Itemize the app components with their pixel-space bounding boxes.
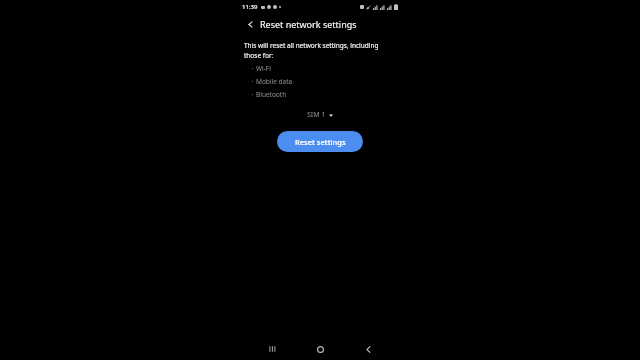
button[interactable]: Recents [262,338,284,360]
button[interactable]: SIM 1 [303,108,337,122]
staticText: Mobile data [256,77,293,86]
staticText: Wi-Fi [256,64,271,73]
staticText: SIM 1 [307,110,326,120]
staticText: Bluetooth [256,90,287,99]
button[interactable]: Home [309,338,331,360]
button[interactable]: Back [243,17,257,31]
button[interactable]: Back [357,338,379,360]
staticText: Reset network settings [260,18,357,30]
staticText: This will reset all network settings, in… [244,41,396,60]
button[interactable]: Reset settings [277,131,363,152]
staticText: Reset settings [295,137,346,147]
staticText: 11:39 [242,3,258,11]
